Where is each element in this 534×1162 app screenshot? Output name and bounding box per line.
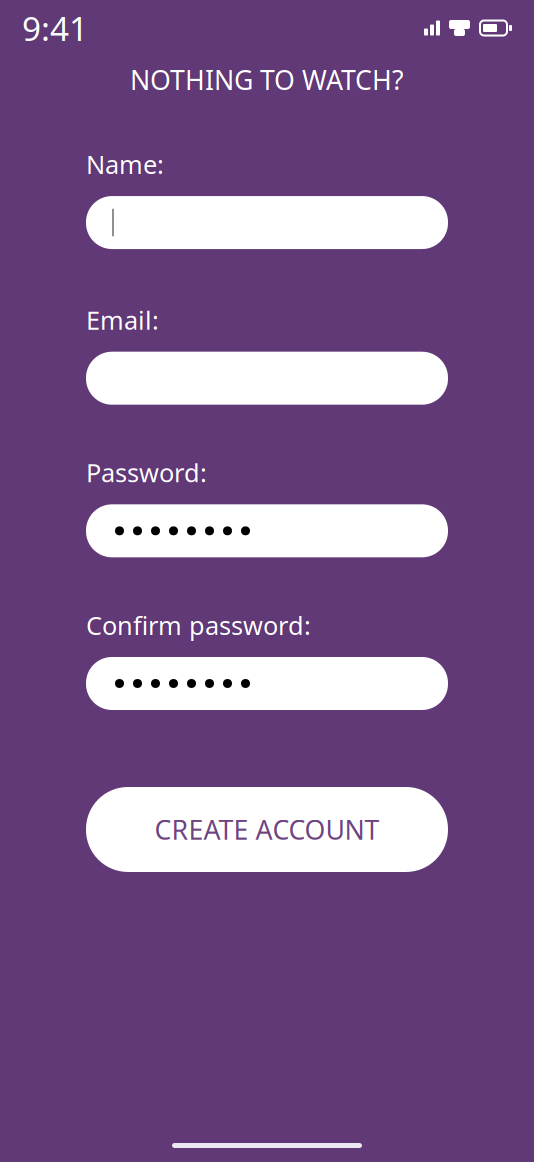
staticText: Password: xyxy=(86,456,207,489)
button[interactable]: Email: xyxy=(86,352,448,405)
staticText: Name: xyxy=(86,147,164,181)
button[interactable]: Confirm password: xyxy=(86,657,448,710)
staticText: Email: xyxy=(86,303,159,337)
button[interactable]: CREATE ACCOUNT xyxy=(86,787,448,872)
staticText: Confirm password: xyxy=(86,608,311,642)
button[interactable]: Name: xyxy=(86,196,448,249)
staticText: CREATE ACCOUNT xyxy=(154,812,379,847)
staticText: NOTHING TO WATCH? xyxy=(130,62,404,97)
staticText: 9:41 xyxy=(22,6,88,50)
button[interactable]: Password: xyxy=(86,504,448,557)
